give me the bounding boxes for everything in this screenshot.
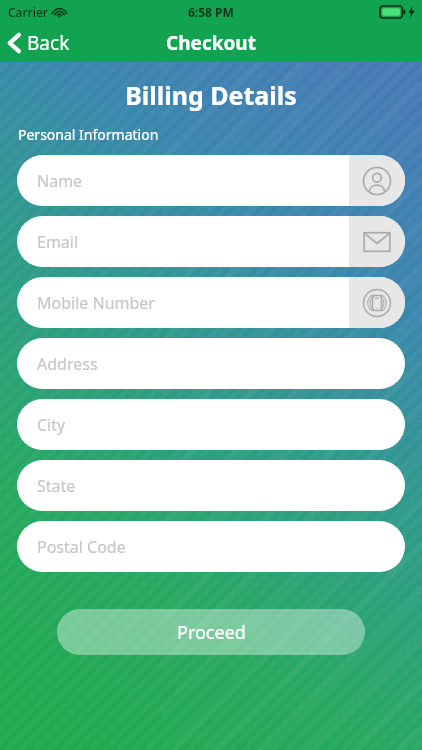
button[interactable]: City: [17, 399, 405, 450]
button[interactable]: State: [17, 460, 405, 511]
other: Name: [362, 166, 392, 196]
button[interactable]: Postal Code: [17, 521, 405, 572]
staticText: Carrier: [8, 4, 48, 20]
staticText: Checkout: [166, 30, 256, 56]
button[interactable]: Proceed: [57, 609, 365, 655]
other: Mobile Number: [362, 288, 392, 318]
button[interactable]: Email: [17, 216, 405, 267]
staticText: 6:58 PM: [188, 4, 234, 20]
button[interactable]: Back: [0, 25, 84, 61]
staticText: Mobile Number: [37, 292, 155, 314]
other: Email: [362, 227, 392, 257]
staticText: Email: [37, 231, 79, 253]
staticText: Address: [37, 353, 98, 375]
button[interactable]: Name: [17, 155, 405, 206]
staticText: City: [37, 414, 66, 436]
staticText: Postal Code: [37, 536, 126, 558]
staticText: Billing Details: [0, 78, 422, 112]
button[interactable]: Mobile Number: [17, 277, 405, 328]
staticText: Name: [37, 170, 83, 192]
staticText: State: [37, 475, 76, 497]
staticText: Back: [27, 30, 70, 56]
staticText: Personal Information: [18, 125, 159, 144]
button[interactable]: Address: [17, 338, 405, 389]
staticText: Proceed: [177, 620, 246, 645]
